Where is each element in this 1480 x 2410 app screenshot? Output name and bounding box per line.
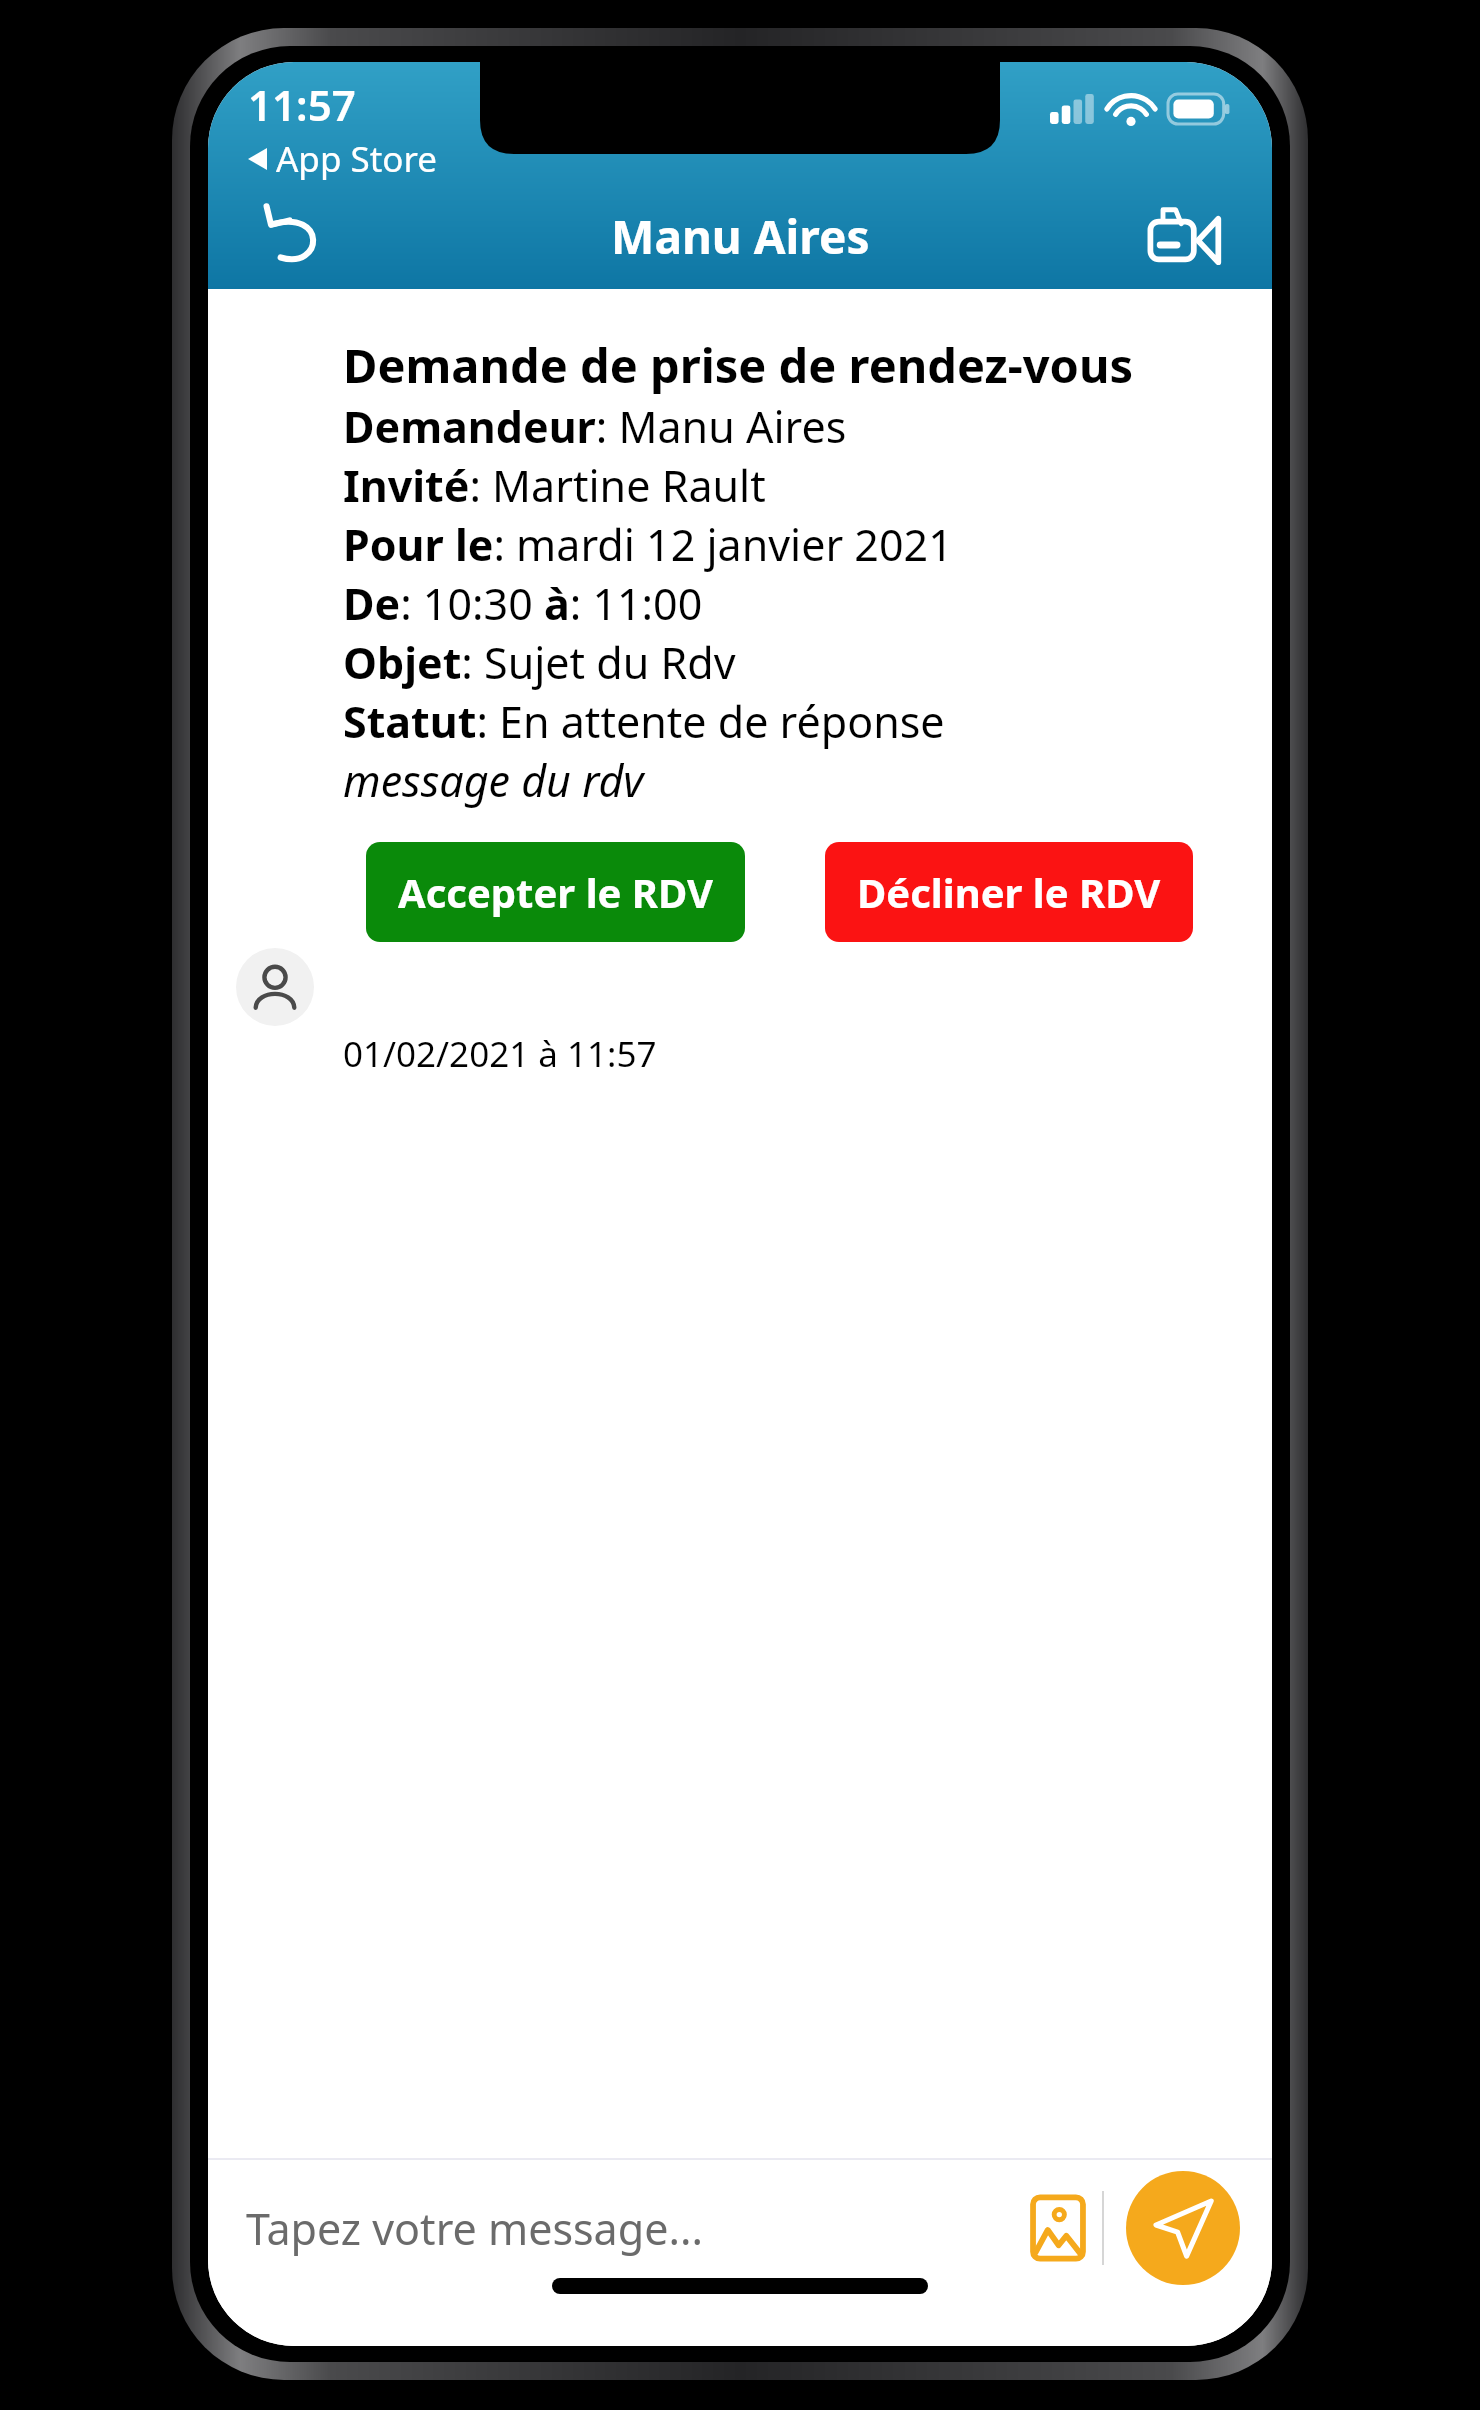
staticText: Accepter le RDV [398,865,713,919]
staticText: Tapez votre message... [246,2199,704,2258]
staticText: Objet: Sujet du Rdv [343,633,736,692]
staticText: Manu Aires [611,205,870,268]
staticText: message du rdv [343,751,644,810]
staticText: Statut: En attente de réponse [343,692,945,751]
staticText: Décliner le RDV [857,865,1161,919]
staticText: Invité: Martine Rault [343,456,766,515]
button[interactable]: Back [248,189,344,285]
staticText: Demandeur: Manu Aires [343,397,847,456]
button[interactable]: Attach image [1014,2184,1102,2272]
button[interactable]: Video call [1136,189,1232,285]
button[interactable]: Décliner le RDV [825,842,1193,942]
button[interactable]: Send [1126,2171,1240,2285]
staticText: 01/02/2021 à 11:57 [343,1030,657,1078]
staticText: 11:57 [248,76,356,133]
staticText: Pour le: mardi 12 janvier 2021 [343,515,953,574]
staticText: App Store [276,135,438,183]
staticText: De: 10:30 à: 11:00 [343,574,703,633]
staticText: Demande de prise de rendez-vous [343,333,1134,397]
button[interactable]: Accepter le RDV [366,842,745,942]
button[interactable]: Tapez votre message... [246,2199,1014,2258]
